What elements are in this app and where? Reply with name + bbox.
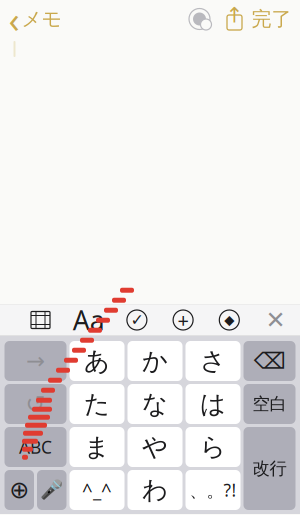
staticText: か (142, 345, 168, 376)
button[interactable]: 改行 (243, 427, 295, 510)
button[interactable]: ABC (4, 427, 66, 467)
button[interactable]: は (185, 384, 240, 424)
button[interactable]: Text Style (72, 305, 106, 334)
staticText: さ (200, 345, 226, 376)
staticText: ⊕ (9, 476, 29, 504)
staticText: ‹ (8, 0, 19, 43)
staticText: メモ (21, 7, 61, 31)
staticText: ↑ (225, 3, 243, 27)
staticText: ✕ (265, 306, 285, 334)
button[interactable]: ら (185, 427, 240, 467)
staticText: は (200, 388, 226, 419)
button[interactable]: 、。?! (185, 470, 240, 510)
button[interactable]: Close Keyboard (260, 305, 290, 334)
button[interactable]: Checklist (122, 305, 152, 334)
button[interactable]: あ (69, 341, 124, 381)
staticText: ✓ (130, 311, 143, 329)
staticText: + (178, 307, 189, 333)
button[interactable]: ⌫ (243, 341, 295, 381)
button[interactable]: た (69, 384, 124, 424)
staticText: ら (200, 431, 226, 462)
staticText: Aa (73, 302, 105, 338)
staticText: ^_^ (82, 478, 112, 502)
staticText: 、。?! (189, 478, 236, 501)
button[interactable]: ‹ (0, 0, 61, 46)
staticText: 空白 (252, 393, 286, 415)
button[interactable]: Table (25, 305, 55, 334)
staticText: 🎤 (40, 479, 63, 501)
button[interactable]: ↺ (4, 384, 66, 424)
staticText: ↺ (25, 390, 45, 418)
button[interactable]: か (127, 341, 182, 381)
staticText: わ (142, 474, 168, 505)
button[interactable]: ま (69, 427, 124, 467)
button[interactable]: や (127, 427, 182, 467)
button[interactable]: な (127, 384, 182, 424)
staticText: な (142, 388, 168, 419)
button[interactable]: Share (217, 4, 251, 34)
staticText: 完了 (251, 7, 291, 31)
button[interactable]: 完了 (251, 4, 300, 34)
button[interactable]: Markup (214, 305, 244, 334)
button[interactable]: 空白 (243, 384, 295, 424)
button[interactable]: 🎤 (37, 470, 66, 510)
staticText: → (26, 348, 45, 374)
button[interactable]: わ (127, 470, 182, 510)
staticText: あ (84, 345, 110, 376)
staticText: た (84, 388, 110, 419)
staticText: や (142, 431, 168, 462)
staticText: ⌫ (253, 348, 285, 374)
button[interactable]: Attachment (168, 305, 198, 334)
button[interactable]: → (4, 341, 66, 381)
staticText: 改行 (252, 458, 286, 479)
button[interactable]: さ (185, 341, 240, 381)
staticText: ABC (19, 435, 52, 458)
button[interactable]: ⊕ (4, 470, 34, 510)
button[interactable]: Add People (181, 4, 217, 34)
button[interactable]: ^_^ (69, 470, 124, 510)
staticText: ま (84, 431, 110, 462)
staticText: ◆ (224, 312, 234, 327)
